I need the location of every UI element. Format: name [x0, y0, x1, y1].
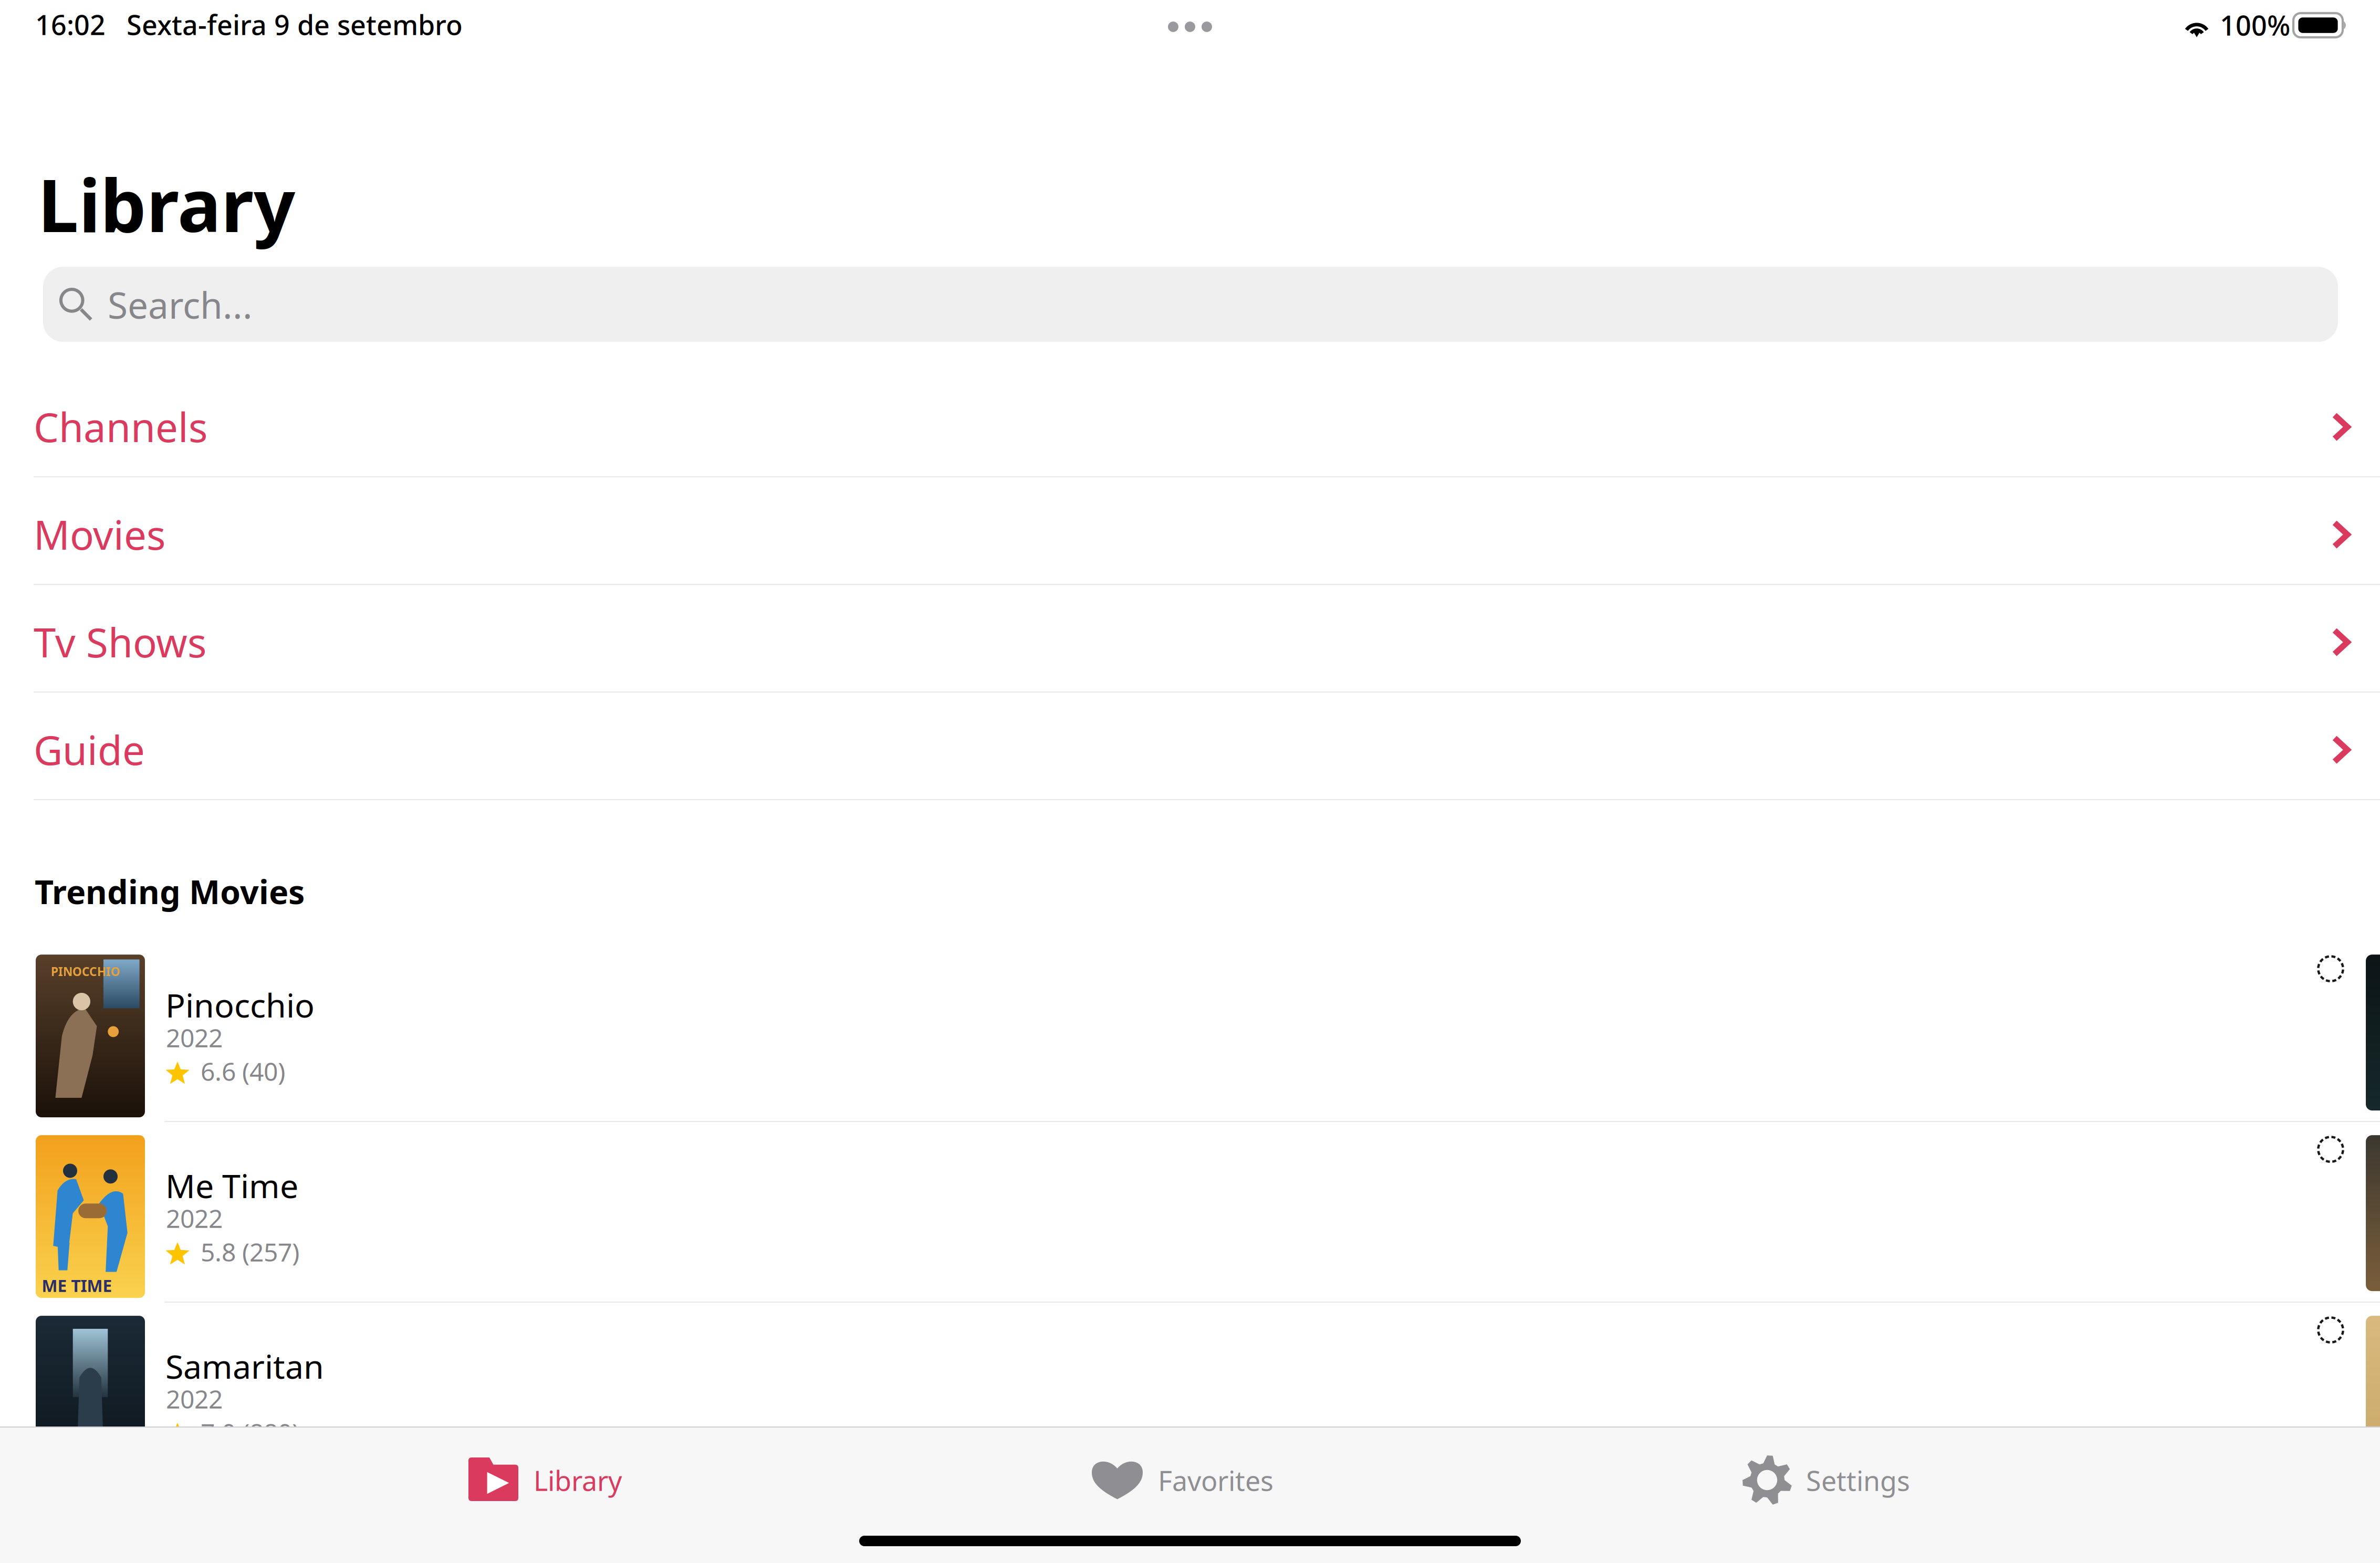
- staticText: Channels: [34, 400, 207, 453]
- staticText: 100%: [2220, 7, 2290, 43]
- staticText: 2022: [166, 1382, 223, 1415]
- staticText: ME TIME: [42, 1274, 112, 1297]
- staticText: PINOCCHIO: [51, 964, 120, 979]
- staticText: Movies: [34, 508, 165, 561]
- staticText: Guide: [34, 723, 145, 776]
- staticText: Samaritan: [165, 1344, 324, 1388]
- button[interactable]: SAMARITAN: [0, 1303, 2380, 1482]
- button[interactable]: Tv Shows: [0, 585, 2380, 692]
- button[interactable]: Settings: [1742, 1440, 1905, 1519]
- staticText: Pinocchio: [165, 983, 315, 1027]
- staticText: Me Time: [165, 1164, 298, 1207]
- staticText: Tv Shows: [34, 615, 206, 668]
- staticText: 2022: [166, 1201, 223, 1235]
- staticText: 16:02: [35, 6, 106, 43]
- button[interactable]: Channels: [0, 370, 2380, 476]
- button[interactable]: ME TIME: [0, 1122, 2380, 1302]
- staticText: Sexta-feira 9 de setembro: [127, 6, 463, 43]
- staticText: 2022: [166, 1021, 223, 1054]
- button[interactable]: PINOCCHIO: [0, 941, 2380, 1121]
- button[interactable]: Library: [468, 1440, 617, 1519]
- staticText: Settings: [1806, 1462, 1910, 1498]
- staticText: Library: [38, 155, 295, 252]
- staticText: Library: [534, 1462, 622, 1498]
- staticText: Search...: [108, 280, 253, 329]
- button[interactable]: Guide: [0, 693, 2380, 799]
- staticText: 5.8 (257): [201, 1235, 299, 1268]
- button[interactable]: Movies: [0, 477, 2380, 584]
- staticText: Trending Movies: [35, 869, 305, 913]
- staticText: Favorites: [1158, 1462, 1273, 1498]
- button[interactable]: Favorites: [1092, 1440, 1262, 1519]
- staticText: 6.6 (40): [201, 1054, 285, 1088]
- staticText: 7.0 (880): [201, 1416, 299, 1449]
